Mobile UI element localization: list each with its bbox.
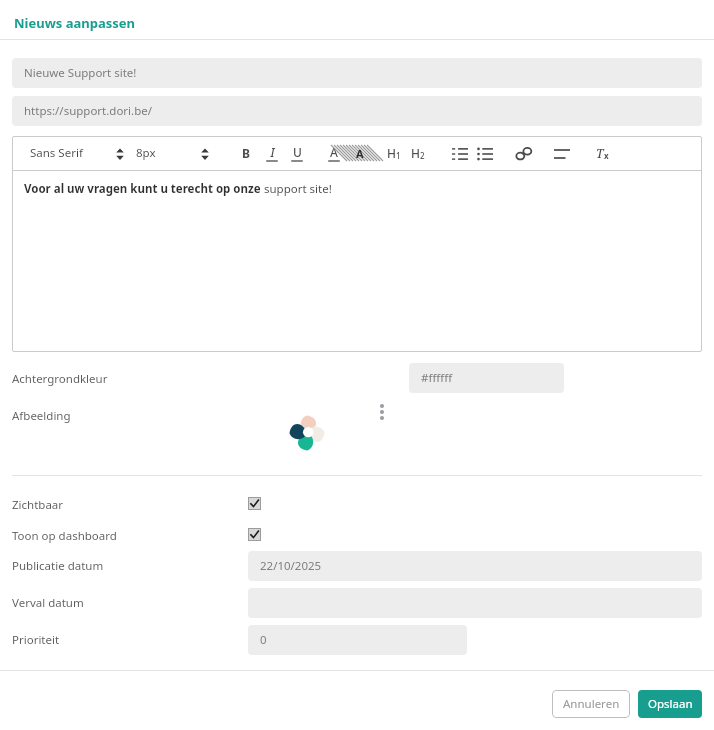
staticText: Nieuwe Support site! xyxy=(24,65,137,81)
button[interactable]: Kop 2 xyxy=(411,145,431,161)
staticText: 1 xyxy=(396,150,401,161)
staticText: A xyxy=(356,146,364,161)
staticText: B xyxy=(242,145,250,161)
button[interactable]: Kies xyxy=(200,147,210,161)
button[interactable]: Onderstrepen xyxy=(288,144,306,164)
staticText: H xyxy=(387,145,396,161)
button[interactable]: Nieuws aanpassen xyxy=(12,12,137,34)
button[interactable]: Opsommingslijst xyxy=(477,146,493,162)
staticText: Prioriteit xyxy=(12,632,60,648)
staticText: Nieuws aanpassen xyxy=(14,14,135,32)
button[interactable]: Genummerde lijst xyxy=(452,146,468,162)
staticText: Opslaan xyxy=(648,696,693,712)
staticText: 0 xyxy=(260,632,267,648)
button[interactable]: Kop 1 xyxy=(387,145,407,161)
staticText: Voor al uw vragen kunt u terecht op onze xyxy=(24,181,264,197)
staticText: T xyxy=(596,145,604,161)
button[interactable]: #ffffff xyxy=(409,363,564,393)
staticText: 2 xyxy=(420,150,425,161)
staticText: Annuleren xyxy=(563,696,620,712)
button[interactable]: Opmaak wissen xyxy=(592,144,612,162)
button[interactable]: Link invoegen xyxy=(516,146,532,162)
button[interactable]: Opslaan xyxy=(638,690,702,718)
staticText: 8px xyxy=(136,145,156,161)
button[interactable]: 8px xyxy=(136,145,156,161)
button[interactable]: 0 xyxy=(248,625,467,655)
staticText: I xyxy=(270,144,275,160)
staticText: Achtergrondkleur xyxy=(12,371,108,387)
staticText: Sans Serif xyxy=(30,145,83,161)
button[interactable]: Aangevinkt xyxy=(248,497,261,510)
staticText: Afbeelding xyxy=(12,408,71,424)
button[interactable]: Markeren xyxy=(351,143,369,163)
staticText: #ffffff xyxy=(421,370,453,386)
staticText: support site! xyxy=(264,181,332,197)
staticText: Publicatie datum xyxy=(12,558,104,574)
staticText: 22/10/2025 xyxy=(260,558,322,574)
staticText: Zichtbaar xyxy=(12,497,64,513)
staticText: A xyxy=(330,144,338,160)
button[interactable]: Sans Serif xyxy=(30,145,83,161)
button[interactable]: https://support.dori.be/ xyxy=(12,96,702,126)
staticText: Verval datum xyxy=(12,595,84,611)
button[interactable]: Meer opties xyxy=(370,400,394,424)
button[interactable]: Cursief xyxy=(263,144,281,164)
staticText: H xyxy=(411,145,420,161)
button[interactable]: Uitlijnen xyxy=(554,148,570,160)
staticText: Toon op dashboard xyxy=(12,528,117,544)
button[interactable]: Tekstkleur xyxy=(325,144,343,164)
staticText: x xyxy=(604,150,609,161)
button[interactable]: Aangevinkt xyxy=(248,528,261,541)
staticText: https://support.dori.be/ xyxy=(24,103,152,119)
button[interactable]: Kies xyxy=(115,147,125,161)
button[interactable]: Vet xyxy=(237,144,255,162)
staticText: U xyxy=(293,144,302,160)
button[interactable]: Nieuwe Support site! xyxy=(12,58,702,88)
button[interactable]: Annuleren xyxy=(552,690,630,718)
button[interactable]: 22/10/2025 xyxy=(248,551,702,581)
